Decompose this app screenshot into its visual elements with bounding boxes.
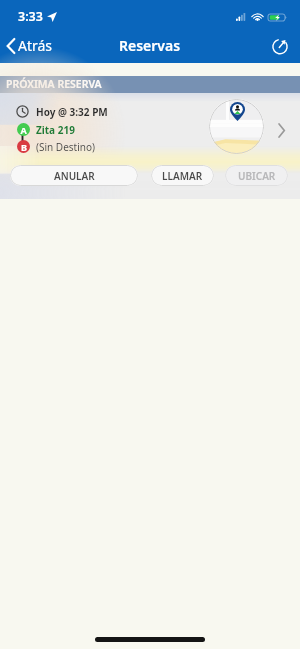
staticText: PRÓXIMA RESERVA	[6, 77, 102, 91]
button: UBICAR	[225, 165, 288, 186]
button[interactable]: LLAMAR	[151, 165, 214, 186]
staticText: 3:33	[18, 8, 43, 25]
staticText: B	[21, 141, 27, 153]
staticText: UBICAR	[238, 169, 276, 183]
staticText: LLAMAR	[162, 169, 203, 183]
staticText: Zita 219	[36, 123, 75, 137]
staticText: A	[20, 124, 27, 136]
button[interactable]: Atrás	[0, 32, 61, 59]
staticText: (Sin Destino)	[36, 140, 95, 154]
button[interactable]: ANULAR	[10, 165, 138, 186]
staticText: Atrás	[18, 36, 53, 55]
staticText: Reservas	[119, 36, 181, 55]
staticText: ANULAR	[54, 169, 95, 183]
button[interactable]: Hoy @ 3:32 PM	[0, 93, 300, 165]
button[interactable]: Refresh	[266, 32, 294, 60]
staticText: Hoy @ 3:32 PM	[36, 105, 108, 119]
